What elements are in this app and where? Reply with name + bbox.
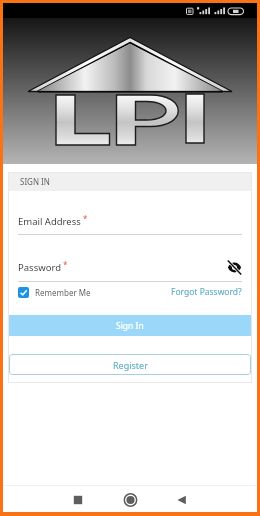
button[interactable]: Recents <box>65 488 91 514</box>
staticText: Sign In <box>116 320 144 332</box>
staticText: Register <box>113 359 148 371</box>
staticText: Email Address <box>18 215 81 228</box>
button[interactable]: Forgot Password? <box>171 286 242 298</box>
staticText: * <box>83 213 88 224</box>
button[interactable]: Home <box>117 488 143 514</box>
staticText: Password <box>18 261 61 274</box>
button[interactable]: Back <box>169 488 195 514</box>
staticText: SIGN IN <box>20 176 50 187</box>
button[interactable]: Sign In <box>9 315 251 336</box>
button[interactable]: Register <box>9 354 251 375</box>
button[interactable]: Remember Me <box>18 287 91 298</box>
button[interactable]: Show password <box>227 260 242 275</box>
staticText: Remember Me <box>35 287 91 298</box>
staticText: * <box>63 259 68 270</box>
